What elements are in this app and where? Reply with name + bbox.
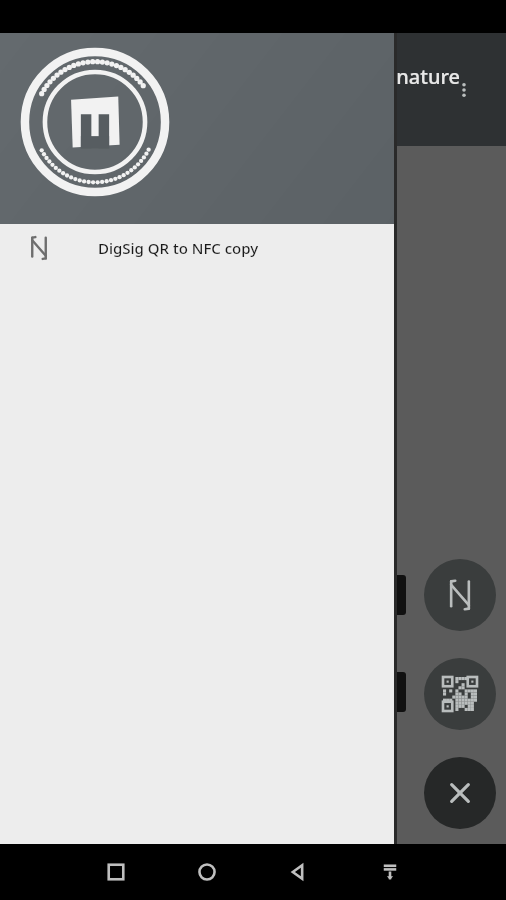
button[interactable]: DigSig QR to NFC copy — [0, 224, 394, 272]
button[interactable]: Recent apps — [70, 844, 161, 900]
button[interactable]: Close — [424, 757, 496, 829]
staticText: Digital Signature Reader — [300, 63, 506, 117]
button[interactable]: Home — [161, 844, 252, 900]
button[interactable]: More options — [444, 70, 484, 110]
staticText: DigSig QR to NFC copy — [98, 238, 259, 258]
button[interactable]: NFC write — [424, 559, 496, 631]
button[interactable]: Scan QR code — [424, 658, 496, 730]
button[interactable]: Hide keyboard — [344, 844, 436, 900]
button[interactable]: Back — [252, 844, 344, 900]
